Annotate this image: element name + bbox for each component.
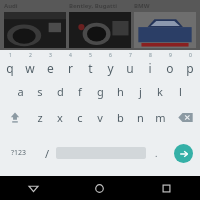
button[interactable]: 5	[80, 50, 100, 78]
staticText: t	[88, 60, 93, 76]
button[interactable]: k	[150, 78, 170, 104]
button[interactable]: x	[50, 104, 70, 130]
button[interactable]: Shift	[0, 104, 30, 130]
staticText: Bentley, Bugatti	[69, 2, 118, 10]
button[interactable]: j	[130, 78, 150, 104]
staticText: e	[47, 60, 54, 76]
staticText: a	[17, 84, 24, 99]
button[interactable]: b	[110, 104, 130, 130]
staticText: x	[57, 110, 63, 125]
staticText: 0	[189, 52, 192, 59]
staticText: m	[155, 110, 166, 125]
staticText: ?123	[11, 148, 27, 158]
staticText: 9	[169, 52, 172, 59]
button[interactable]: v	[90, 104, 110, 130]
staticText: o	[166, 60, 174, 76]
button[interactable]: ?123	[0, 130, 38, 176]
staticText: z	[37, 110, 43, 125]
button[interactable]: BMW	[134, 0, 196, 50]
staticText: y	[107, 60, 114, 76]
staticText: 5	[89, 52, 92, 59]
staticText: i	[148, 60, 152, 76]
button[interactable]: Home	[66, 176, 133, 200]
staticText: g	[97, 84, 104, 99]
button[interactable]: 8	[140, 50, 160, 78]
staticText: c	[77, 110, 83, 125]
staticText: n	[137, 110, 144, 125]
button[interactable]: m	[150, 104, 170, 130]
staticText: l	[179, 84, 182, 99]
staticText: f	[78, 84, 82, 99]
staticText: h	[117, 84, 124, 99]
button[interactable]: Bentley, Bugatti	[69, 0, 131, 50]
staticText: s	[37, 84, 43, 99]
staticText: /	[45, 146, 50, 161]
button[interactable]: 1	[0, 50, 20, 78]
button[interactable]: h	[110, 78, 130, 104]
staticText: p	[186, 60, 194, 76]
staticText: j	[139, 84, 142, 99]
staticText: v	[97, 110, 103, 125]
button[interactable]: 7	[120, 50, 140, 78]
button[interactable]: 9	[160, 50, 180, 78]
button[interactable]: 0	[180, 50, 200, 78]
button[interactable]: /	[38, 130, 56, 176]
staticText: BMW	[134, 2, 150, 10]
staticText: 3	[49, 52, 52, 59]
button[interactable]: Backspace	[170, 104, 200, 130]
button[interactable]: s	[30, 78, 50, 104]
button[interactable]: 4	[60, 50, 80, 78]
button[interactable]: a	[10, 78, 30, 104]
button[interactable]: 6	[100, 50, 120, 78]
staticText: w	[25, 60, 35, 76]
button[interactable]: Send	[174, 144, 193, 163]
button[interactable]: Audi	[4, 0, 66, 50]
staticText: u	[126, 60, 134, 76]
button[interactable]: 2	[20, 50, 40, 78]
button[interactable]: n	[130, 104, 150, 130]
button[interactable]: d	[50, 78, 70, 104]
staticText: r	[68, 60, 73, 76]
button[interactable]: f	[70, 78, 90, 104]
staticText: q	[6, 60, 14, 76]
staticText: 4	[69, 52, 72, 59]
staticText: d	[57, 84, 64, 99]
staticText: 6	[109, 52, 112, 59]
button[interactable]: Recents	[133, 176, 200, 200]
button[interactable]: 3	[40, 50, 60, 78]
button[interactable]: l	[170, 78, 190, 104]
button[interactable]: .	[146, 130, 166, 176]
button[interactable]: c	[70, 104, 90, 130]
button[interactable]: z	[30, 104, 50, 130]
button[interactable]: g	[90, 78, 110, 104]
staticText: k	[157, 84, 163, 99]
staticText: 2	[29, 52, 32, 59]
staticText: .	[155, 147, 158, 159]
staticText: Audi	[4, 2, 18, 10]
button[interactable]: Back	[0, 176, 66, 200]
staticText: 1	[9, 52, 12, 59]
staticText: b	[117, 110, 124, 125]
staticText: 8	[149, 52, 152, 59]
staticText: 7	[129, 52, 132, 59]
